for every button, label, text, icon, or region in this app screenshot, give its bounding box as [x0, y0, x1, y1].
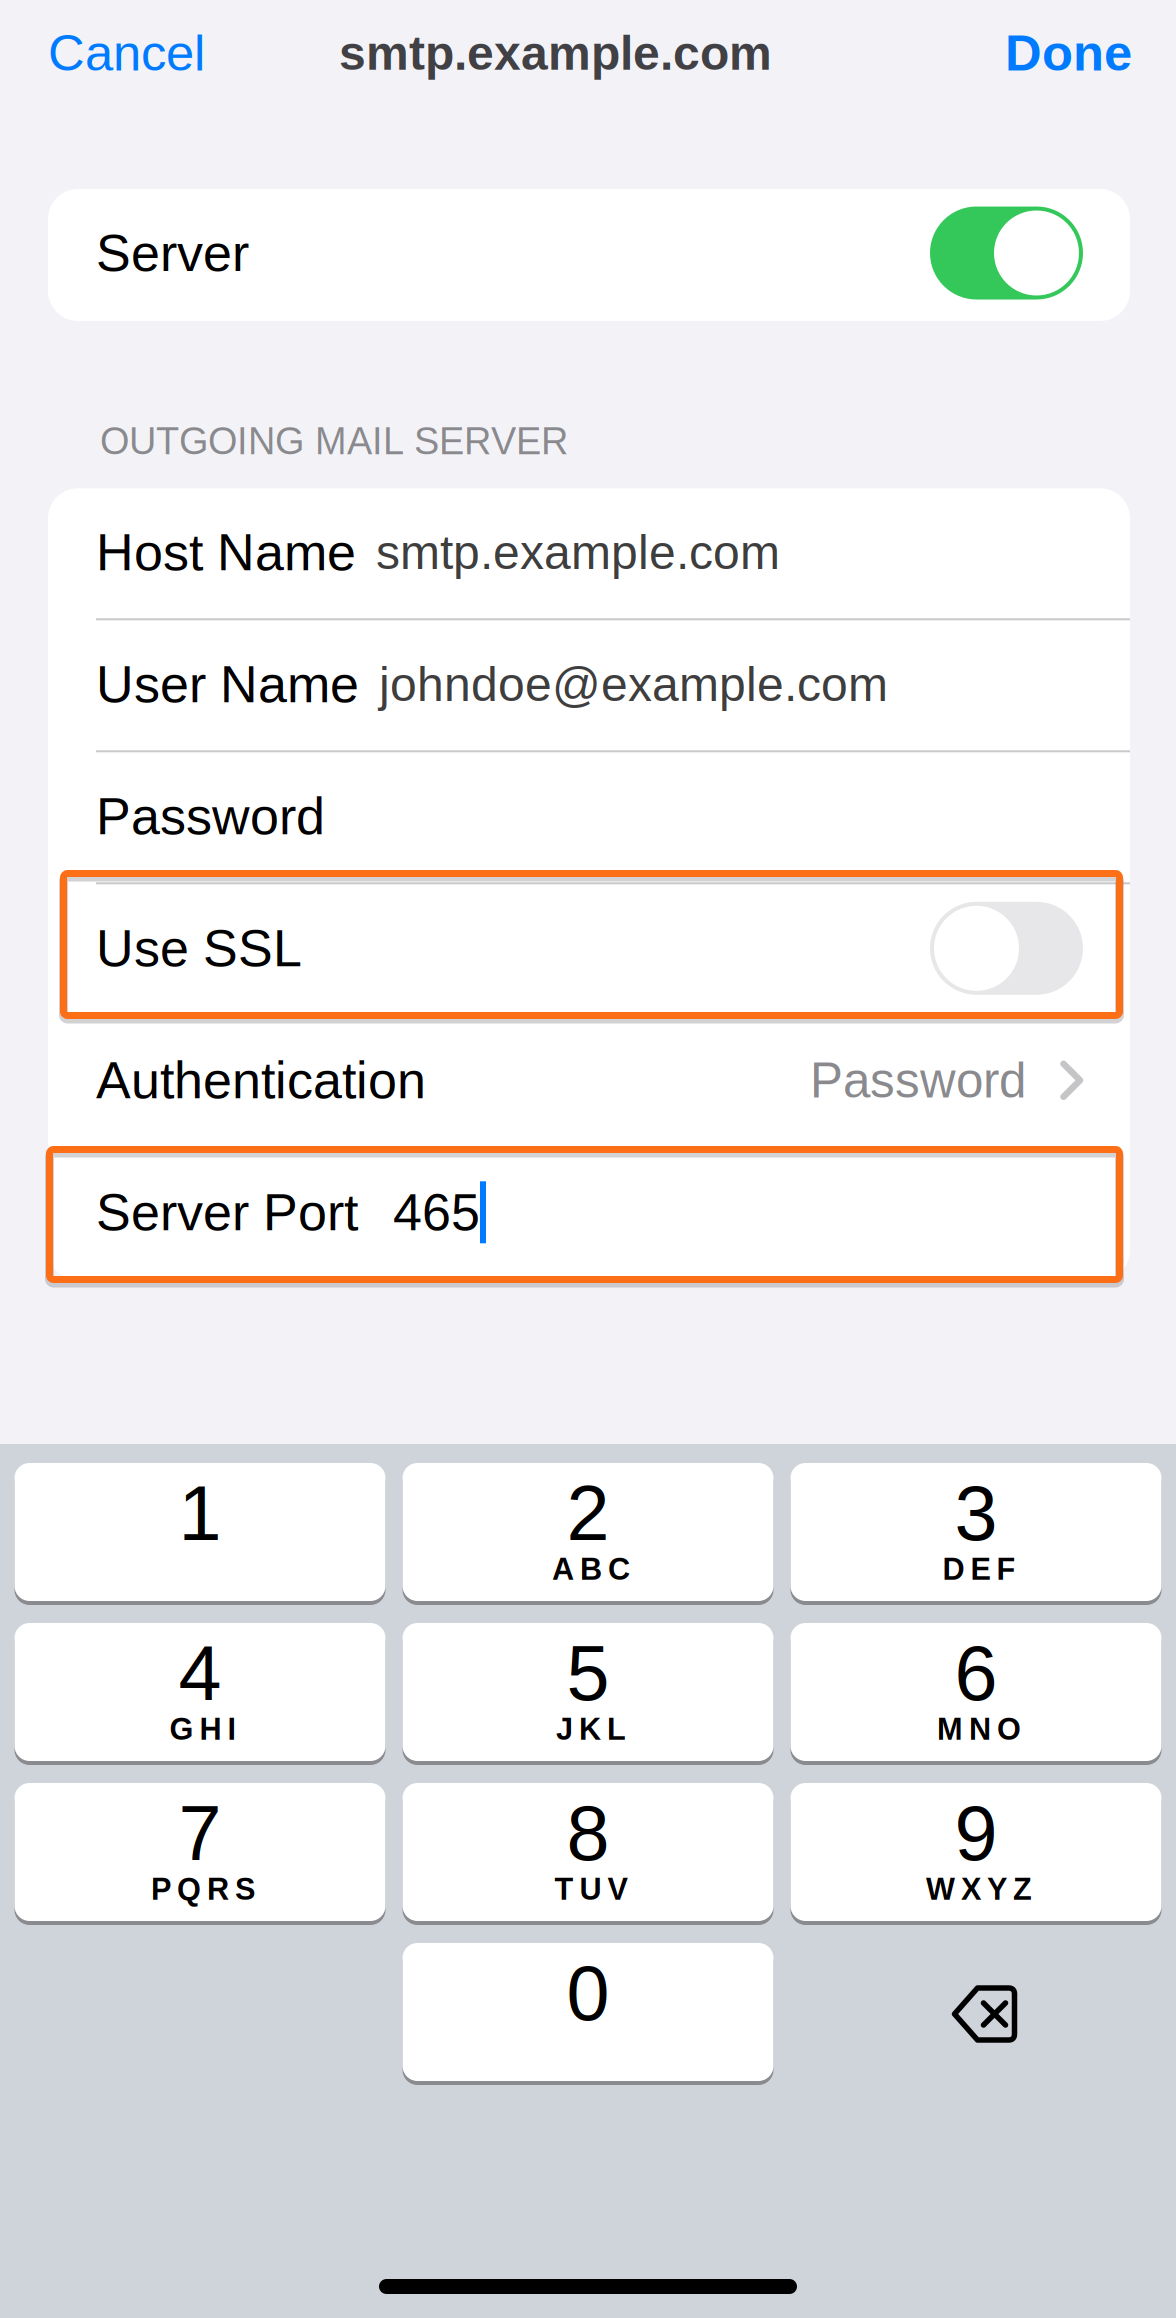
staticText: 2 — [566, 1470, 609, 1556]
staticText: 465 — [393, 1183, 480, 1241]
button[interactable]: 8 — [402, 1783, 773, 1925]
staticText: 7 — [178, 1790, 221, 1876]
staticText: 6 — [954, 1630, 997, 1716]
button[interactable]: 1 — [14, 1463, 385, 1605]
staticText: Server — [96, 224, 249, 282]
staticText: 8 — [566, 1790, 609, 1876]
staticText: DEF — [942, 1552, 1015, 1586]
staticText: Use SSL — [96, 919, 302, 977]
staticText: johndoe@example.com — [379, 657, 888, 711]
staticText: Authentication — [96, 1051, 426, 1109]
button[interactable]: 3 — [790, 1463, 1161, 1605]
button[interactable]: 7 — [14, 1783, 385, 1925]
staticText: MNO — [937, 1712, 1021, 1746]
staticText: Host Name — [96, 523, 356, 581]
button[interactable]: Authentication — [48, 1016, 1130, 1148]
button[interactable]: User Name — [48, 620, 1130, 752]
button[interactable]: 9 — [790, 1783, 1161, 1925]
button[interactable]: Delete — [790, 1943, 1161, 2085]
button[interactable]: Cancel — [48, 9, 205, 97]
staticText: User Name — [96, 655, 359, 713]
button[interactable]: 4 — [14, 1623, 385, 1765]
button[interactable]: Server — [48, 189, 1130, 321]
staticText: Server Port — [96, 1183, 358, 1241]
button[interactable]: 0 — [402, 1943, 773, 2085]
button[interactable]: Server Port — [48, 1148, 1130, 1280]
staticText: 9 — [954, 1790, 997, 1876]
button[interactable]: Done — [1005, 9, 1132, 97]
staticText: smtp.example.com — [339, 26, 772, 80]
staticText: GHI — [169, 1712, 236, 1746]
staticText: 4 — [178, 1630, 221, 1716]
staticText: 1 — [178, 1470, 221, 1556]
staticText: JKL — [556, 1712, 626, 1746]
staticText: PQRS — [151, 1872, 255, 1906]
staticText: 0 — [566, 1950, 609, 2036]
staticText: OUTGOING MAIL SERVER — [100, 420, 568, 462]
staticText: Password — [810, 1053, 1026, 1108]
staticText: TUV — [554, 1872, 627, 1906]
staticText: 5 — [566, 1630, 609, 1716]
staticText: Done — [1005, 25, 1132, 81]
button[interactable]: 6 — [790, 1623, 1161, 1765]
button[interactable]: Use SSL — [48, 884, 1130, 1016]
staticText: Cancel — [48, 25, 205, 81]
button[interactable]: 5 — [402, 1623, 773, 1765]
staticText: WXYZ — [926, 1872, 1032, 1906]
button[interactable]: 2 — [402, 1463, 773, 1605]
staticText: Password — [96, 787, 325, 845]
button[interactable]: Password — [48, 752, 1130, 884]
button[interactable]: Host Name — [48, 488, 1130, 620]
staticText: 3 — [954, 1470, 997, 1556]
staticText: smtp.example.com — [376, 525, 780, 579]
staticText: ABC — [552, 1552, 630, 1586]
